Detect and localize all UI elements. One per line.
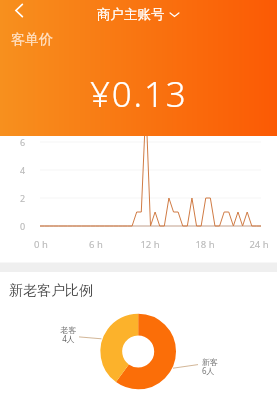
staticText: 6 h <box>80 238 112 251</box>
staticText: 2 <box>20 192 26 204</box>
staticText: 0 h <box>25 238 57 251</box>
staticText: 新客 6人 <box>202 357 220 376</box>
staticText: ¥0.13 <box>90 70 188 118</box>
button[interactable]: 商户主账号 <box>93 4 184 25</box>
staticText: 客单价 <box>11 31 53 49</box>
staticText: 6 <box>20 136 26 148</box>
button[interactable]: Back <box>0 0 38 21</box>
staticText: 24 h <box>243 238 275 251</box>
staticText: 4 <box>20 164 26 176</box>
staticText: 新老客户比例 <box>9 282 93 300</box>
staticText: 12 h <box>134 238 166 251</box>
staticText: 18 h <box>189 238 221 251</box>
staticText: 老客 4人 <box>60 325 77 344</box>
staticText: 0 <box>20 220 26 232</box>
staticText: 商户主账号 <box>97 6 165 23</box>
